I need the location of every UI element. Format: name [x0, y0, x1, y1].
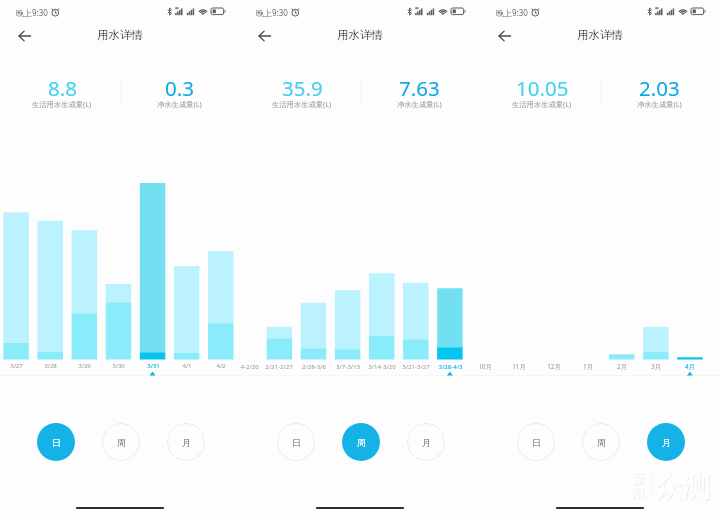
staticText: 3/30 — [112, 362, 125, 370]
staticText: 12月 — [547, 362, 561, 371]
button[interactable]: 周 — [342, 423, 380, 461]
staticText: 净水生成量(L) — [397, 99, 442, 109]
staticText: 周 — [117, 437, 126, 448]
staticText: 晚上9:30 — [16, 7, 48, 18]
staticText: 3/29 — [78, 362, 91, 370]
staticText: 周 — [357, 437, 366, 448]
staticText: 日 — [532, 437, 541, 448]
button[interactable]: 2/14-2/20 — [240, 362, 269, 370]
button[interactable]: 11月 — [495, 362, 543, 371]
staticText: 月 — [422, 437, 431, 448]
button[interactable]: 3/14-3/20 — [358, 362, 406, 370]
button[interactable]: 4/1 — [163, 362, 211, 370]
staticText: 2.03 — [639, 74, 680, 102]
staticText: 月 — [182, 437, 191, 448]
button[interactable]: 2/28-3/6 — [290, 362, 338, 370]
button[interactable]: 3/28-4/3 — [426, 362, 474, 370]
button[interactable]: Back — [248, 22, 276, 50]
staticText: 1月 — [583, 362, 593, 371]
button[interactable]: 3/30 — [94, 362, 142, 370]
staticText: 净水生成量(L) — [157, 99, 202, 109]
staticText: 周 — [597, 437, 606, 448]
staticText: 7.63 — [399, 74, 440, 102]
staticText: 新 — [632, 470, 645, 486]
staticText: 生活用水生成量(L) — [32, 99, 92, 109]
staticText: 3/28 — [44, 362, 57, 370]
staticText: 生活用水生成量(L) — [512, 99, 572, 109]
staticText: 浪 — [632, 484, 645, 500]
button[interactable]: 周 — [102, 423, 140, 461]
staticText: 日 — [292, 437, 301, 448]
staticText: 晚上9:30 — [256, 7, 288, 18]
staticText: 用水详情 — [577, 28, 623, 42]
staticText: 净水生成量(L) — [637, 99, 682, 109]
staticText: 3月 — [651, 362, 661, 371]
button[interactable]: 日 — [517, 423, 555, 461]
staticText: 2/14-2/20 — [240, 362, 259, 370]
staticText: 4/2 — [216, 362, 226, 370]
button[interactable]: 3/28 — [26, 362, 74, 370]
button[interactable]: 3月 — [632, 362, 680, 371]
button[interactable]: 4月 — [666, 362, 714, 371]
button[interactable]: 日 — [37, 423, 75, 461]
staticText: 2月 — [617, 362, 627, 371]
button[interactable]: 月 — [407, 423, 445, 461]
staticText: 3/27 — [10, 362, 23, 370]
button[interactable]: 月 — [647, 423, 685, 461]
staticText: 4/1 — [182, 362, 192, 370]
staticText: 生活用水生成量(L) — [272, 99, 332, 109]
staticText: 8.8 — [48, 74, 77, 102]
staticText: 10.05 — [516, 74, 569, 102]
staticText: 3/21-3/27 — [402, 362, 430, 370]
staticText: 3/7-3/13 — [336, 362, 360, 370]
staticText: 3/31 — [147, 362, 160, 370]
staticText: 新 — [633, 471, 646, 487]
staticText: 2/21-2/27 — [265, 362, 293, 370]
button[interactable]: 10月 — [480, 362, 509, 371]
staticText: 11月 — [512, 362, 526, 371]
staticText: 用水详情 — [337, 28, 383, 42]
button[interactable]: 月 — [167, 423, 205, 461]
staticText: 月 — [662, 437, 671, 448]
button[interactable]: 日 — [277, 423, 315, 461]
staticText: 众测 — [656, 470, 712, 505]
button[interactable]: 2月 — [598, 362, 646, 371]
button[interactable]: Back — [488, 22, 516, 50]
button[interactable]: 3/31 — [129, 362, 177, 370]
button[interactable]: 4/2 — [197, 362, 240, 370]
button[interactable]: 2/21-2/27 — [255, 362, 303, 370]
button[interactable]: 周 — [582, 423, 620, 461]
button[interactable]: 3/7-3/13 — [324, 362, 372, 370]
staticText: 晚上9:30 — [496, 7, 528, 18]
staticText: 3/14-3/20 — [368, 362, 396, 370]
staticText: 4月 — [685, 362, 695, 371]
staticText: 众测 — [655, 469, 711, 504]
button[interactable]: 3/27 — [0, 362, 40, 370]
staticText: 3/28-4/3 — [438, 362, 463, 370]
button[interactable]: Back — [8, 22, 36, 50]
button[interactable]: 12月 — [530, 362, 578, 371]
staticText: 10月 — [480, 362, 492, 371]
staticText: 浪 — [633, 485, 646, 501]
staticText: 0.3 — [165, 74, 194, 102]
button[interactable]: 1月 — [564, 362, 612, 371]
staticText: 2/28-3/6 — [302, 362, 326, 370]
button[interactable]: 3/21-3/27 — [392, 362, 440, 370]
staticText: 用水详情 — [97, 28, 143, 42]
staticText: 日 — [52, 437, 61, 448]
staticText: 35.9 — [282, 74, 323, 102]
button[interactable]: 3/29 — [60, 362, 108, 370]
